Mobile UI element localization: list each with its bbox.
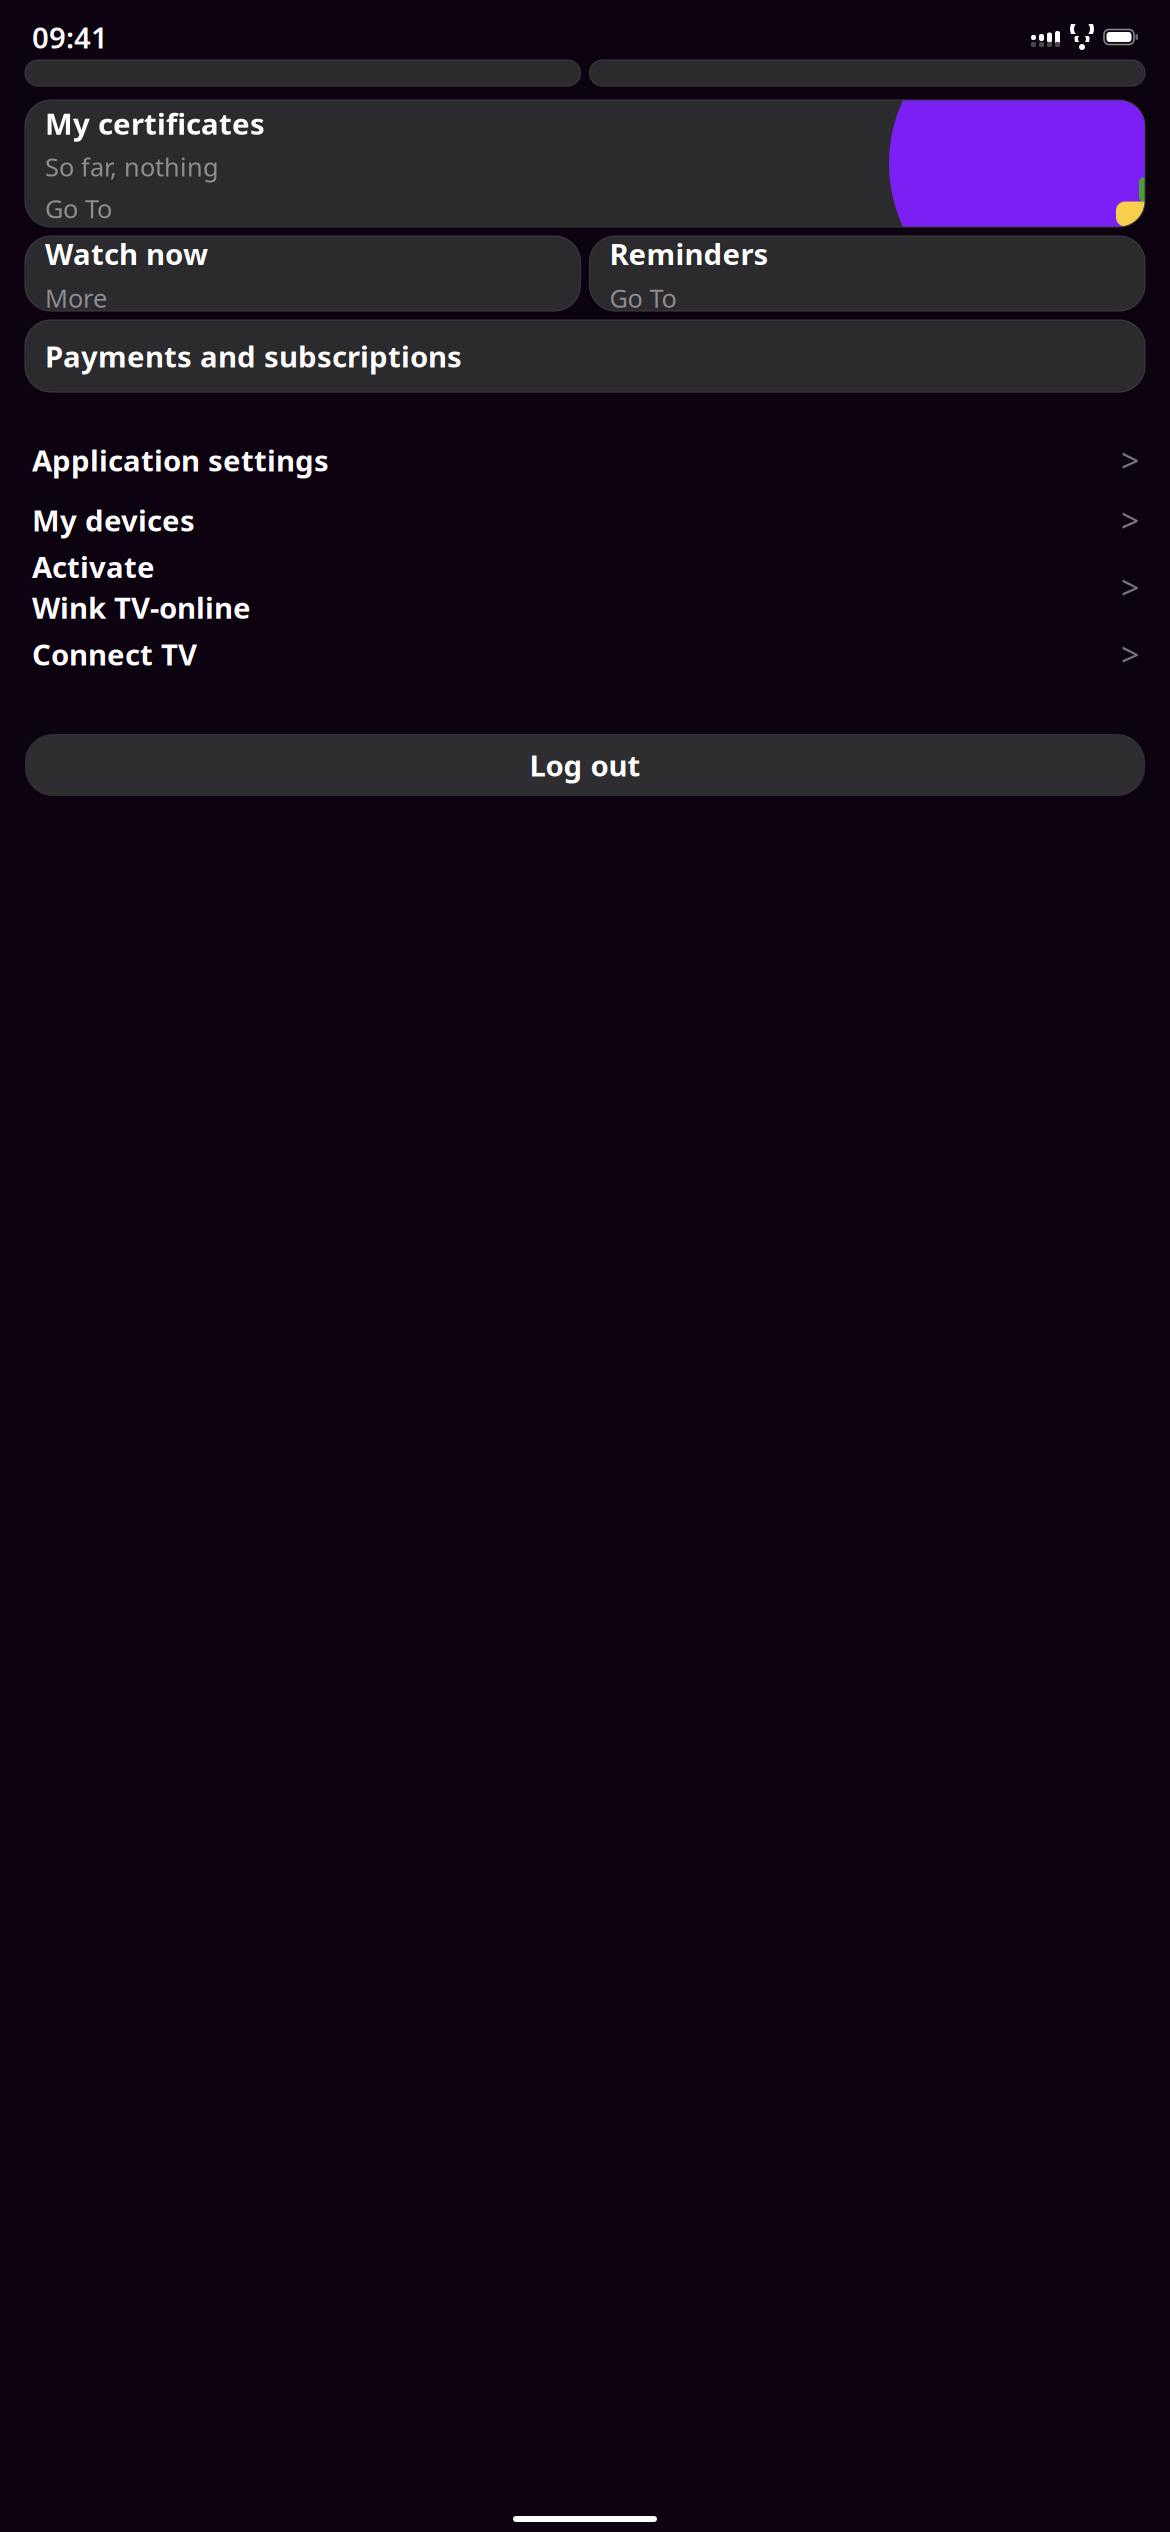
button[interactable]: Log out xyxy=(25,734,1145,796)
button[interactable]: Activate xyxy=(24,550,1146,624)
staticText: Payments and subscriptions xyxy=(45,336,462,375)
button[interactable]: Payments and subscriptions xyxy=(25,320,1145,392)
staticText: Go To xyxy=(609,281,676,315)
button[interactable]: My devices xyxy=(24,490,1146,550)
staticText: Application settings xyxy=(32,440,329,479)
staticText: My certificates xyxy=(45,104,265,143)
staticText: So far, nothing xyxy=(45,150,219,183)
button[interactable]: Connect TV xyxy=(24,624,1146,684)
staticText: Reminders xyxy=(609,234,768,273)
button[interactable]: Reminders xyxy=(589,236,1145,311)
button[interactable]: Application settings xyxy=(24,430,1146,490)
staticText: More xyxy=(45,281,107,315)
staticText: Activate xyxy=(32,547,155,586)
staticText: My devices xyxy=(32,500,195,539)
button[interactable]: Watch now xyxy=(25,236,580,311)
staticText: Log out xyxy=(529,745,640,784)
staticText: > xyxy=(1121,439,1139,481)
staticText: Watch now xyxy=(45,234,208,273)
staticText: > xyxy=(1121,566,1139,608)
staticText: Connect TV xyxy=(32,634,197,673)
staticText: Go To xyxy=(45,191,112,225)
button[interactable]: My certificates xyxy=(25,100,1145,227)
staticText: > xyxy=(1121,633,1139,675)
staticText: Wink TV-online xyxy=(32,588,251,627)
staticText: 09:41 xyxy=(32,17,108,56)
staticText: > xyxy=(1121,499,1139,541)
